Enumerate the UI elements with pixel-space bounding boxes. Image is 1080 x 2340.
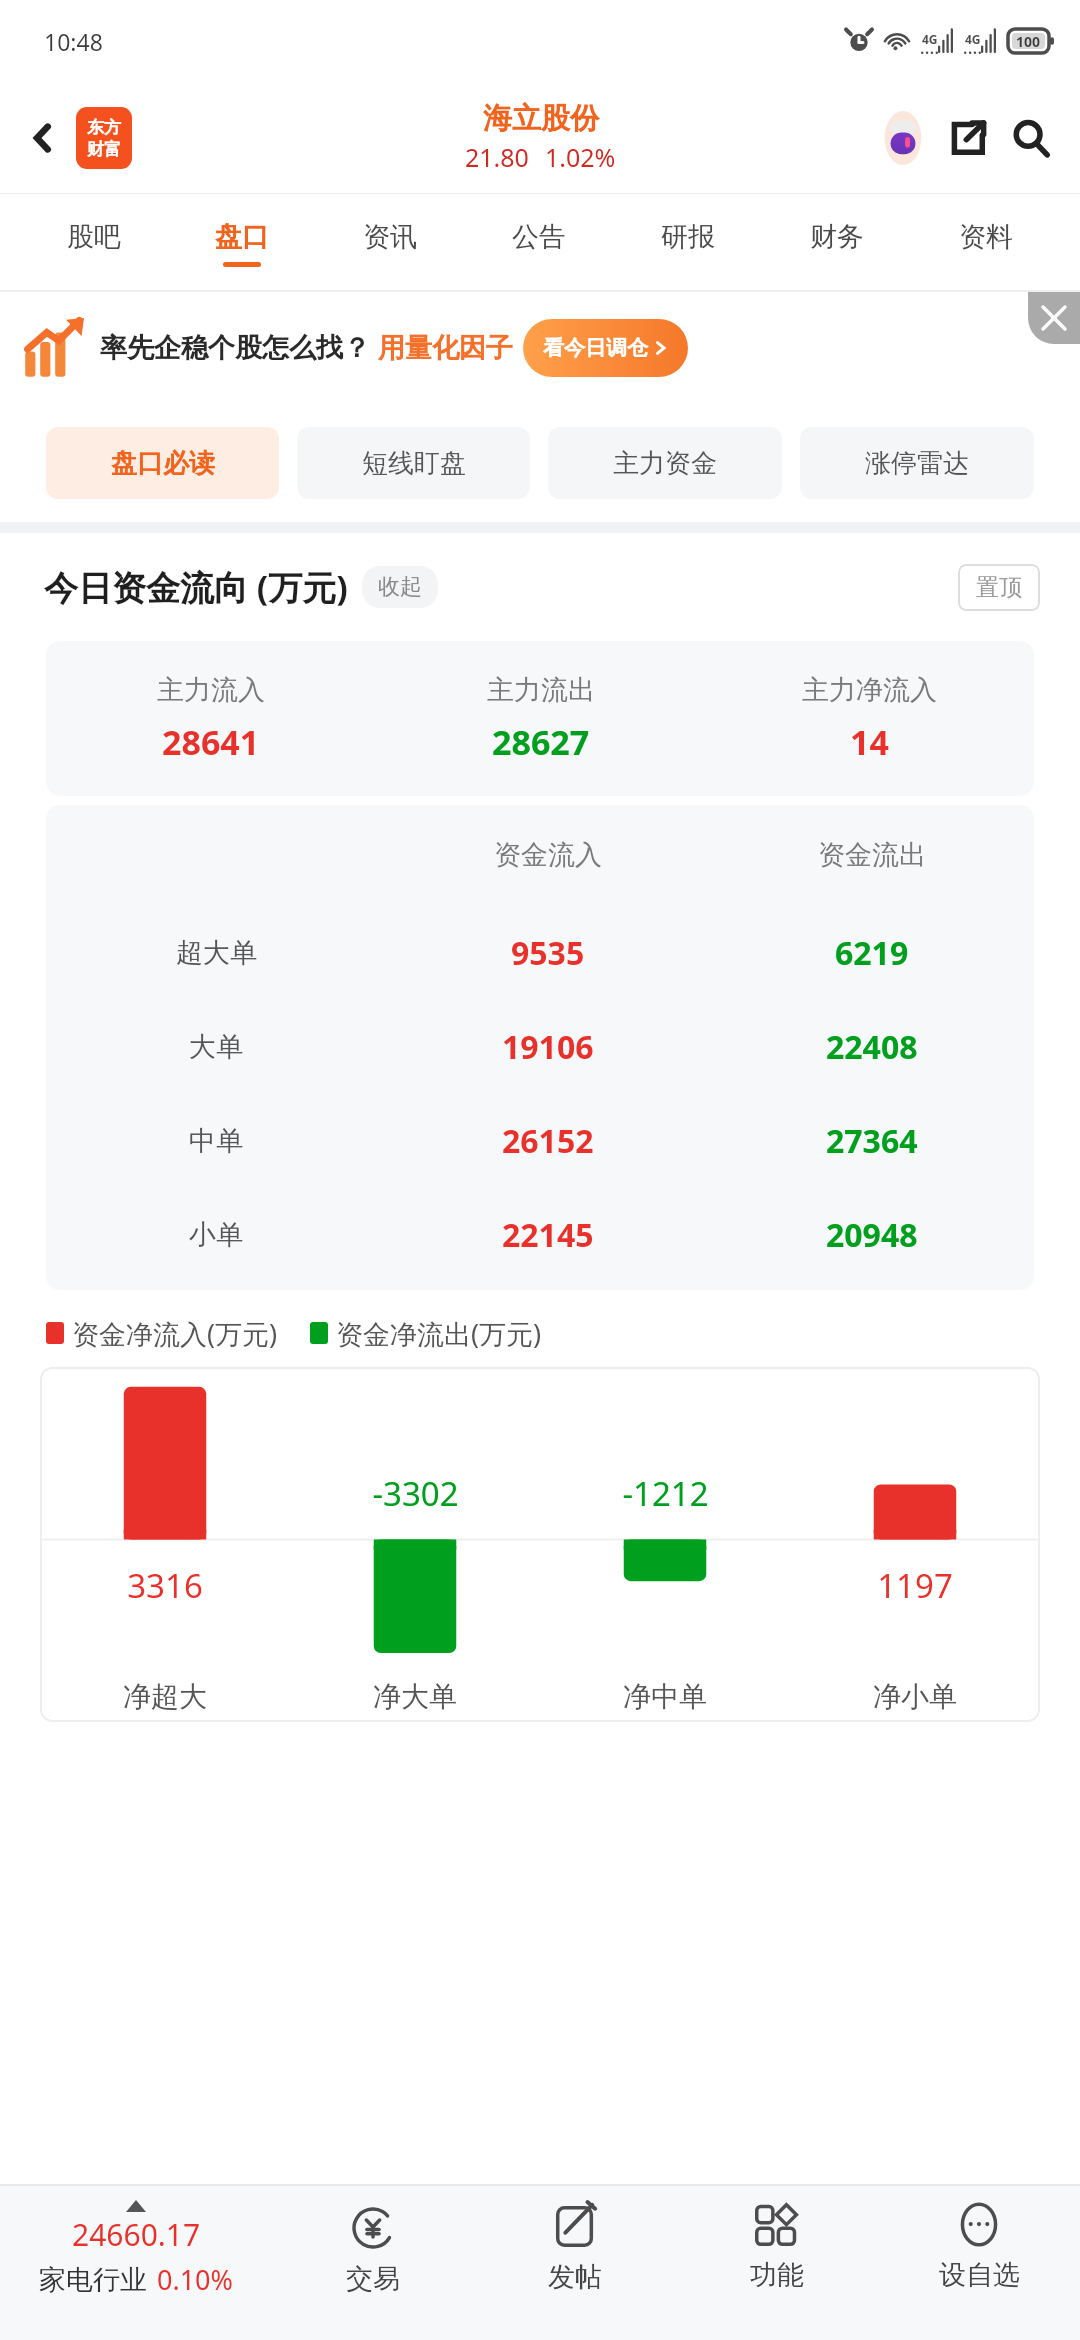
- staticText: 家电行业: [39, 2263, 147, 2297]
- button[interactable]: Back: [14, 109, 72, 167]
- button[interactable]: 率先企稳个股怎么找？: [24, 292, 1062, 404]
- staticText: 发帖: [548, 2260, 602, 2294]
- staticText: 公告: [512, 220, 566, 254]
- staticText: 中单: [189, 1124, 243, 1158]
- button[interactable]: 研报: [613, 194, 762, 292]
- staticText: 净超大: [123, 1679, 207, 1714]
- staticText: 0.10%: [157, 2261, 234, 2298]
- staticText: 置顶: [976, 573, 1022, 602]
- staticText: 主力资金: [613, 447, 717, 480]
- button[interactable]: AI assistant: [872, 107, 934, 169]
- button[interactable]: 看今日调仓: [543, 319, 668, 377]
- staticText: 交易: [346, 2262, 400, 2296]
- staticText: 24660.17: [72, 2214, 201, 2255]
- button[interactable]: Close ad: [1028, 292, 1080, 344]
- staticText: 21.80: [465, 140, 529, 174]
- staticText: 超大单: [176, 936, 257, 970]
- button[interactable]: 设自选: [878, 2186, 1080, 2340]
- staticText: 功能: [750, 2258, 804, 2292]
- staticText: 1197: [877, 1563, 953, 1608]
- staticText: 6219: [835, 931, 909, 975]
- staticText: 海立股份: [483, 100, 599, 137]
- staticText: 1.02%: [545, 140, 616, 174]
- staticText: 资讯: [363, 220, 417, 254]
- staticText: 28641: [162, 719, 260, 765]
- staticText: 22408: [826, 1025, 918, 1069]
- button[interactable]: 交易: [272, 2186, 474, 2340]
- button[interactable]: East Money: [76, 107, 132, 169]
- staticText: 27364: [826, 1119, 918, 1163]
- staticText: 收起: [378, 573, 422, 601]
- staticText: 28627: [492, 719, 590, 765]
- button[interactable]: 盘口: [168, 194, 316, 292]
- staticText: 盘口: [215, 220, 269, 254]
- staticText: 资料: [959, 220, 1013, 254]
- button[interactable]: 发帖: [474, 2186, 676, 2340]
- staticText: 资金净流入(万元): [72, 1315, 278, 1352]
- staticText: 26152: [502, 1119, 594, 1163]
- staticText: -3302: [372, 1471, 459, 1516]
- staticText: 3316: [127, 1563, 203, 1608]
- button[interactable]: 短线盯盘: [297, 427, 530, 499]
- staticText: 盘口必读: [111, 447, 215, 480]
- staticText: 资金净流出(万元): [336, 1315, 542, 1352]
- staticText: 涨停雷达: [865, 447, 969, 480]
- staticText: 19106: [502, 1025, 594, 1069]
- staticText: 净中单: [623, 1679, 707, 1714]
- staticText: 今日资金流向 (万元): [44, 564, 348, 610]
- staticText: 主力流出: [487, 673, 595, 707]
- button[interactable]: Search: [1000, 107, 1062, 169]
- staticText: 资金流出: [818, 838, 926, 872]
- staticText: 14: [850, 719, 889, 765]
- staticText: 大单: [189, 1030, 243, 1064]
- button[interactable]: Share: [938, 108, 998, 168]
- button[interactable]: 财务: [762, 194, 911, 292]
- staticText: -1212: [622, 1471, 709, 1516]
- staticText: 净小单: [873, 1679, 957, 1714]
- button[interactable]: 收起: [378, 573, 422, 601]
- staticText: 主力净流入: [802, 673, 937, 707]
- staticText: 资金流入: [494, 838, 602, 872]
- staticText: 20948: [826, 1213, 918, 1257]
- staticText: 短线盯盘: [362, 447, 466, 480]
- staticText: 财务: [810, 220, 864, 254]
- button[interactable]: 资讯: [316, 194, 464, 292]
- button[interactable]: 资料: [911, 194, 1060, 292]
- staticText: 小单: [189, 1218, 243, 1252]
- staticText: 100: [1016, 32, 1041, 51]
- staticText: 股吧: [67, 220, 121, 254]
- staticText: 10:48: [44, 26, 103, 57]
- staticText: 东方: [87, 117, 121, 138]
- button[interactable]: 24660.17: [0, 2186, 272, 2340]
- button[interactable]: 股吧: [20, 194, 168, 292]
- button[interactable]: 置顶: [976, 573, 1022, 602]
- staticText: 9535: [511, 931, 585, 975]
- staticText: 22145: [502, 1213, 594, 1257]
- staticText: 4G: [922, 31, 938, 47]
- staticText: 财富: [87, 139, 121, 160]
- staticText: 看今日调仓: [543, 335, 648, 361]
- button[interactable]: 主力资金: [548, 427, 782, 499]
- button[interactable]: 涨停雷达: [800, 427, 1034, 499]
- staticText: 率先企稳个股怎么找？: [100, 331, 370, 365]
- staticText: 主力流入: [157, 673, 265, 707]
- button[interactable]: 盘口必读: [46, 427, 279, 499]
- staticText: 研报: [661, 220, 715, 254]
- staticText: 用量化因子: [378, 331, 513, 365]
- staticText: 净大单: [373, 1679, 457, 1714]
- staticText: 4G: [965, 31, 981, 47]
- button[interactable]: 公告: [464, 194, 613, 292]
- staticText: 设自选: [939, 2258, 1020, 2292]
- button[interactable]: 功能: [676, 2186, 878, 2340]
